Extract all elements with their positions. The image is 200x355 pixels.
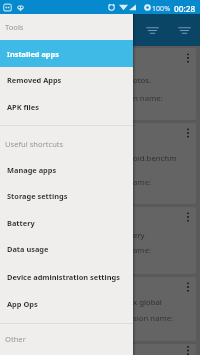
button[interactable]: Device administration settings — [0, 263, 133, 290]
staticText: Battery — [7, 218, 35, 228]
button[interactable]: Removed Apps — [0, 66, 133, 93]
staticText: ame: — [133, 177, 152, 188]
staticText: ery — [133, 230, 145, 241]
staticText: n name: — [133, 93, 163, 104]
staticText: x global — [133, 297, 162, 308]
button[interactable]: oid.benchm — [4, 123, 196, 204]
button[interactable]: More options — [179, 278, 196, 295]
button[interactable]: More options — [4, 344, 196, 355]
button[interactable]: Battery — [0, 209, 133, 236]
staticText: sion name: — [133, 313, 174, 324]
button[interactable]: ery — [4, 207, 196, 274]
staticText: Data usage — [7, 244, 49, 254]
staticText: ame: — [133, 245, 152, 256]
button[interactable]: More options — [179, 124, 196, 141]
button[interactable]: More options — [179, 208, 196, 225]
button[interactable]: x global — [4, 277, 196, 341]
button[interactable]: Installed apps — [0, 40, 133, 67]
staticText: Removed Apps — [7, 75, 62, 85]
button[interactable]: Filter — [142, 20, 162, 40]
button[interactable]: APK files — [0, 93, 133, 120]
button[interactable]: More options — [179, 49, 196, 66]
button[interactable]: Filter — [174, 20, 194, 40]
button[interactable]: Manage apps — [0, 156, 133, 183]
staticText: Manage apps — [7, 165, 57, 175]
button[interactable]: More options — [179, 345, 196, 355]
staticText: App Ops — [7, 299, 38, 309]
staticText: Device administration settings — [7, 272, 120, 282]
staticText: 100% — [152, 3, 171, 13]
staticText: Storage settings — [7, 191, 68, 201]
staticText: Tools — [5, 22, 24, 32]
button[interactable]: App Ops — [0, 290, 133, 317]
staticText: Useful shortcuts — [5, 139, 64, 149]
staticText: APK files — [7, 102, 39, 112]
staticText: 00:28 — [174, 3, 196, 14]
staticText: Other — [5, 334, 26, 344]
button[interactable]: otos. — [4, 48, 196, 120]
button[interactable]: Data usage — [0, 235, 133, 262]
staticText: oid.benchm — [133, 153, 177, 164]
staticText: otos. — [133, 75, 152, 86]
button[interactable]: Storage settings — [0, 182, 133, 209]
staticText: Installed apps — [7, 49, 59, 59]
